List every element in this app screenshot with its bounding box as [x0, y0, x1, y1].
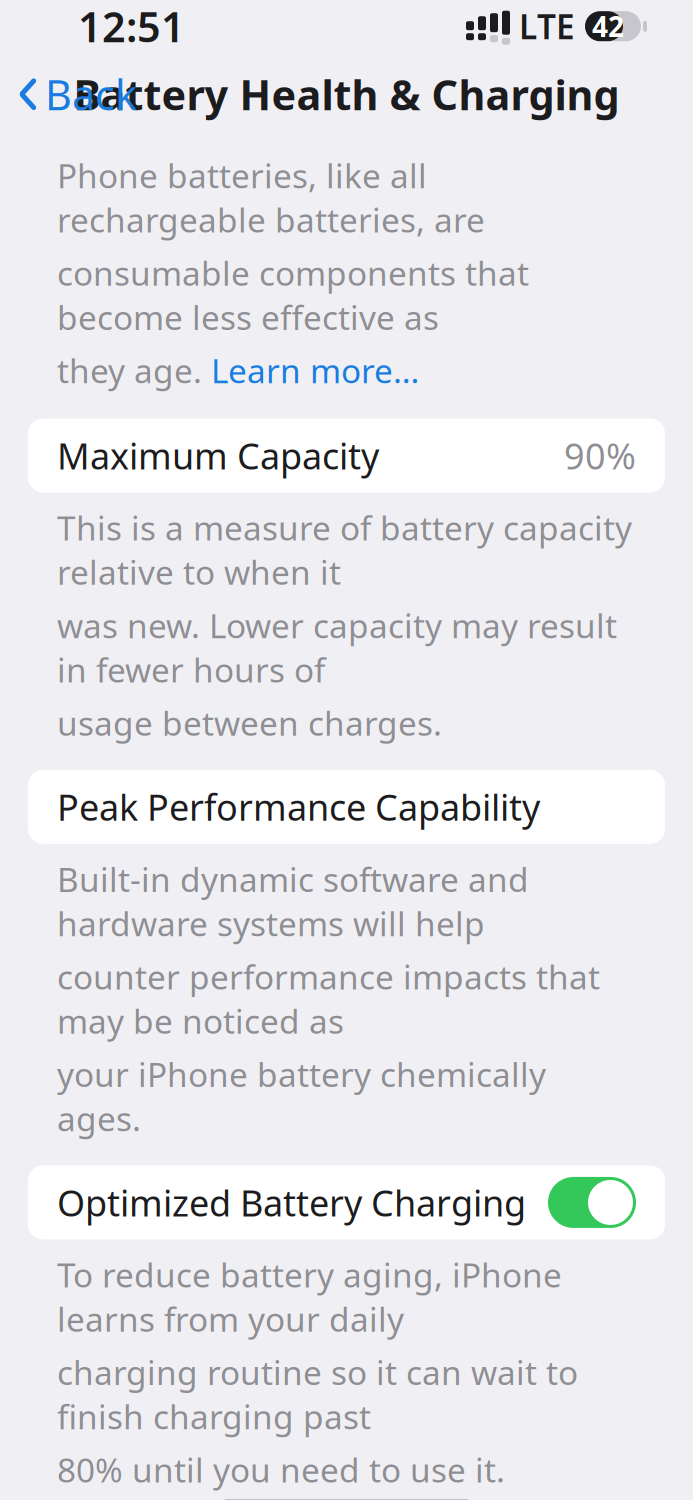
- staticText: 12:51: [78, 0, 185, 54]
- staticText: 90%: [564, 432, 636, 479]
- staticText: your iPhone battery chemically ages.: [57, 1052, 546, 1140]
- button[interactable]: Optimized Battery Charging: [28, 1165, 665, 1239]
- staticText: Phone batteries, like all rechargeable b…: [57, 153, 485, 242]
- staticText: This is a measure of battery capacity re…: [57, 505, 632, 594]
- staticText: To reduce battery aging, iPhone learns f…: [57, 1252, 562, 1341]
- staticText: was new. Lower capacity may result in fe…: [57, 603, 617, 692]
- staticText: Built-in dynamic software and hardware s…: [57, 857, 529, 945]
- button[interactable]: Learn more…: [211, 348, 419, 393]
- staticText: Maximum Capacity: [57, 432, 379, 479]
- staticText: 42: [592, 8, 624, 45]
- staticText: 80% until you need to use it.: [57, 1447, 505, 1492]
- staticText: Back: [45, 67, 137, 122]
- staticText: Optimized Battery Charging: [57, 1179, 526, 1226]
- staticText: consumable components that become less e…: [57, 251, 529, 339]
- button[interactable]: Back: [0, 59, 137, 130]
- button[interactable]: Peak Performance Capability: [28, 770, 665, 844]
- staticText: charging routine so it can wait to finis…: [57, 1350, 578, 1438]
- staticText: Learn more…: [211, 348, 419, 393]
- staticText: LTE: [519, 4, 575, 48]
- staticText: they age.: [57, 348, 211, 393]
- staticText: counter performance impacts that may be …: [57, 954, 600, 1043]
- staticText: Battery Health & Charging: [73, 67, 619, 122]
- staticText: usage between charges.: [57, 701, 442, 745]
- staticText: Peak Performance Capability: [57, 783, 540, 831]
